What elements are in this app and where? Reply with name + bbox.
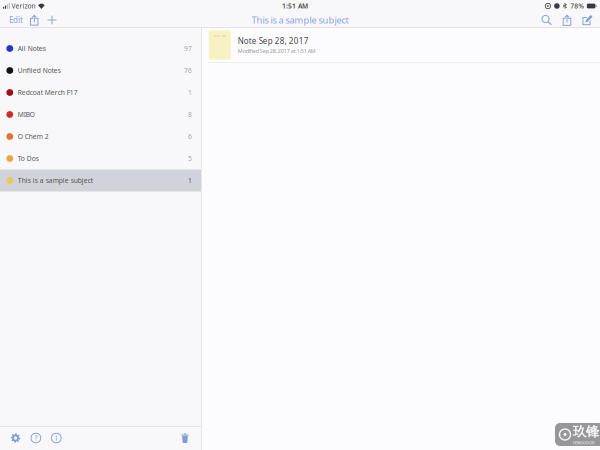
button[interactable]: Settings [5,429,26,447]
staticText: All Notes [18,44,46,53]
button[interactable]: Share [26,12,42,28]
button[interactable]: New Folder [42,12,61,28]
staticText: 玖锋 [573,424,599,440]
staticText: 8 [188,110,192,119]
button[interactable]: Compose [577,12,598,28]
staticText: Redcoat Merch F17 [18,88,78,97]
staticText: This is a sample subject [18,176,93,185]
staticText: MIBO [18,110,35,119]
staticText: 1 [188,88,192,97]
staticText: Edit [9,15,23,25]
button[interactable]: This is a sample subject [0,169,201,191]
button[interactable]: Help [26,429,46,447]
button[interactable]: To Dos [0,147,201,169]
staticText: 1:51 AM [282,2,308,10]
button[interactable]: Edit [6,12,26,28]
staticText: 6 [188,132,192,141]
staticText: i [55,434,57,442]
staticText: To Dos [18,154,39,163]
button[interactable]: MIBO [0,103,201,125]
staticText: FENGODOR [573,440,595,445]
staticText: Verizon [11,2,35,10]
button[interactable]: O Chem 2 [0,125,201,147]
button[interactable]: This is a sample subject [251,14,348,26]
staticText: 5 [188,154,192,163]
button[interactable]: Share Note [557,12,577,28]
staticText: This is a sample subject [251,14,348,26]
staticText: Modified Sep 28, 2017 at 1:51 AM [238,47,316,54]
button[interactable]: note text [202,28,600,62]
staticText: 97 [184,44,192,53]
button[interactable]: Info [46,429,66,447]
button[interactable]: All Notes [0,37,201,59]
button[interactable]: Trash [176,429,194,447]
staticText: ? [34,434,37,442]
staticText: 78% [570,2,584,10]
staticText: Note Sep 28, 2017 [238,36,309,46]
button[interactable]: Search [536,12,557,28]
staticText: O Chem 2 [18,132,49,141]
staticText: Unfiled Notes [18,66,61,75]
button[interactable]: Unfiled Notes [0,59,201,81]
staticText: note text [214,34,226,37]
staticText: 76 [184,66,192,75]
button[interactable]: Redcoat Merch F17 [0,81,201,103]
staticText: 1 [188,176,192,185]
